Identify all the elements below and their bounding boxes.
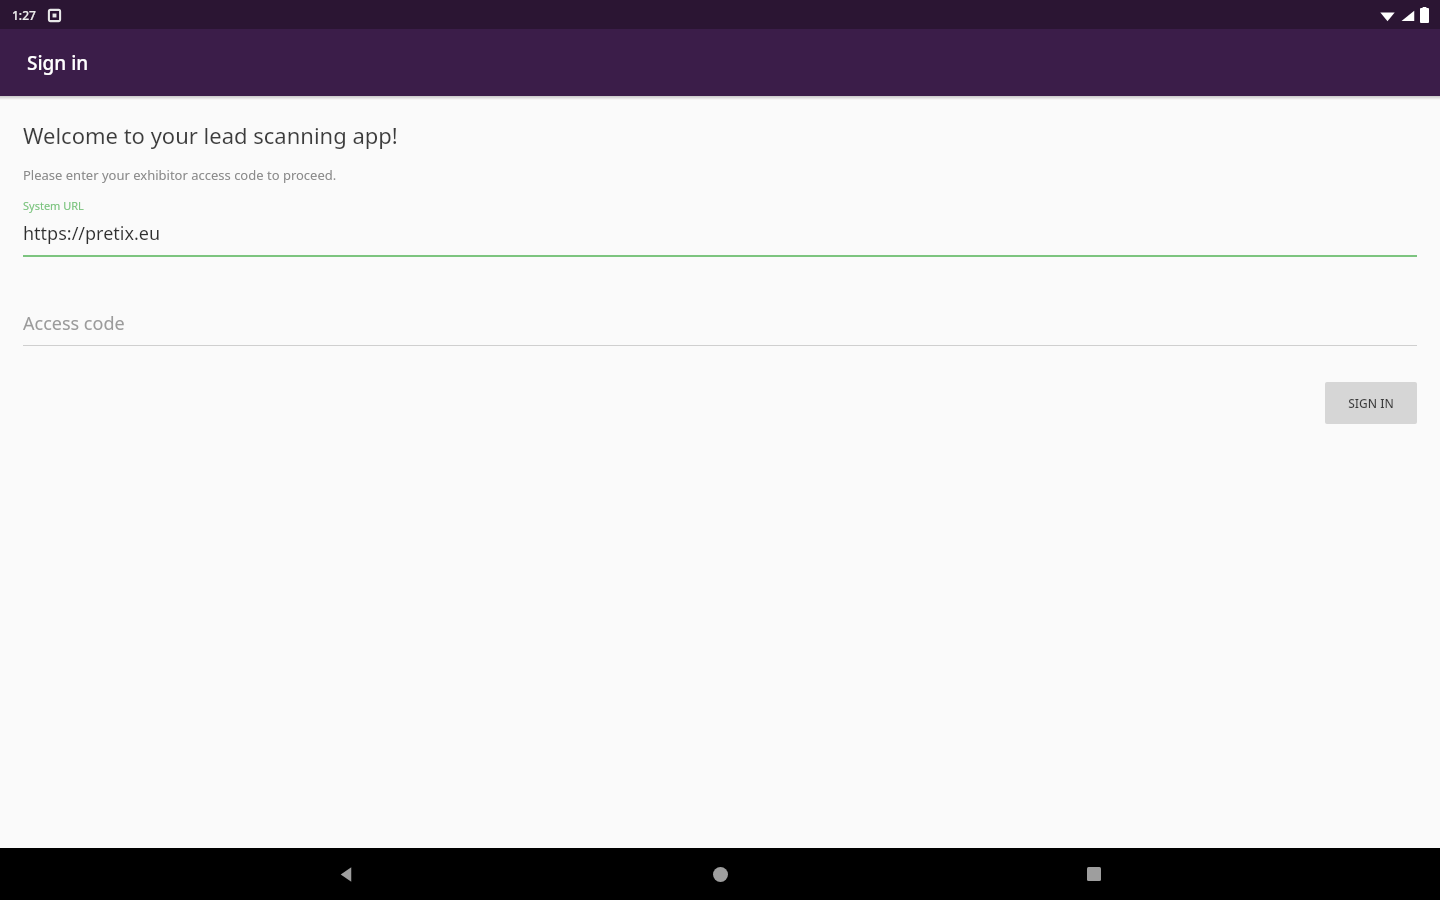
staticText: Sign in: [27, 50, 89, 76]
button[interactable]: SIGN IN: [1325, 382, 1417, 424]
staticText: Access code: [23, 311, 125, 336]
staticText: Please enter your exhibitor access code …: [23, 166, 337, 184]
staticText: SIGN IN: [1348, 395, 1394, 411]
staticText: Welcome to your lead scanning app!: [23, 120, 398, 150]
staticText: https://pretix.eu: [23, 221, 161, 246]
button[interactable]: Home: [692, 848, 748, 900]
staticText: 1:27: [12, 7, 36, 23]
staticText: System URL: [23, 198, 84, 213]
button[interactable]: Access code: [23, 311, 1417, 346]
button[interactable]: Back: [318, 848, 374, 900]
button[interactable]: Recent apps: [1066, 848, 1122, 900]
button[interactable]: https://pretix.eu: [23, 221, 1417, 257]
